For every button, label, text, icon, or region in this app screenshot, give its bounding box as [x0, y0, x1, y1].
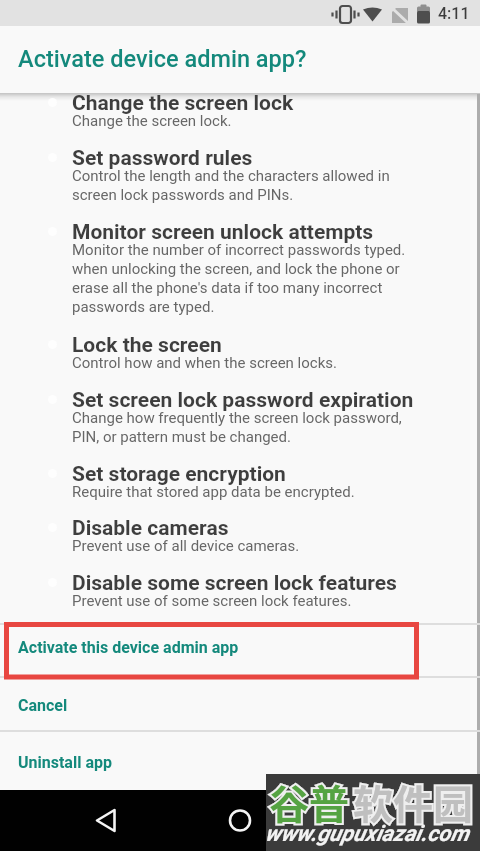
- staticText: Set storage encryption: [72, 462, 286, 487]
- staticText: Disable some screen lock features: [72, 571, 397, 596]
- button[interactable]: Activate this device admin app: [0, 625, 480, 676]
- staticText: Require that stored app data be encrypte…: [72, 483, 355, 501]
- staticText: Control the length and the characters al…: [72, 167, 390, 204]
- staticText: Set password rules: [72, 146, 253, 171]
- staticText: 软件园: [353, 773, 473, 831]
- staticText: Change the screen lock: [72, 91, 294, 116]
- staticText: Change how frequently the screen lock pa…: [72, 409, 402, 446]
- staticText: Set screen lock password expiration: [72, 388, 414, 413]
- staticText: Change the screen lock.: [72, 112, 232, 130]
- staticText: Monitor screen unlock attempts: [72, 220, 374, 245]
- button[interactable]: Cancel: [0, 678, 480, 730]
- staticText: Cancel: [18, 696, 68, 715]
- staticText: Activate device admin app?: [18, 45, 307, 73]
- staticText: 4:11: [438, 4, 470, 23]
- button[interactable]: [214, 795, 266, 847]
- staticText: Control how and when the screen locks.: [72, 354, 337, 372]
- staticText: 软件园: [353, 773, 473, 831]
- staticText: Lock the screen: [72, 333, 222, 358]
- staticText: Disable cameras: [72, 516, 229, 541]
- staticText: Uninstall app: [18, 753, 112, 772]
- staticText: Activate this device admin app: [18, 638, 239, 657]
- button[interactable]: [80, 795, 132, 847]
- button[interactable]: Uninstall app: [0, 732, 480, 788]
- staticText: Monitor the number of incorrect password…: [72, 241, 406, 316]
- staticText: 谷普: [269, 773, 349, 831]
- staticText: Prevent use of all device cameras.: [72, 537, 300, 555]
- staticText: Prevent use of some screen lock features…: [72, 592, 352, 610]
- staticText: 谷普: [269, 773, 349, 831]
- staticText: www.gupuxiazai.com: [265, 821, 469, 847]
